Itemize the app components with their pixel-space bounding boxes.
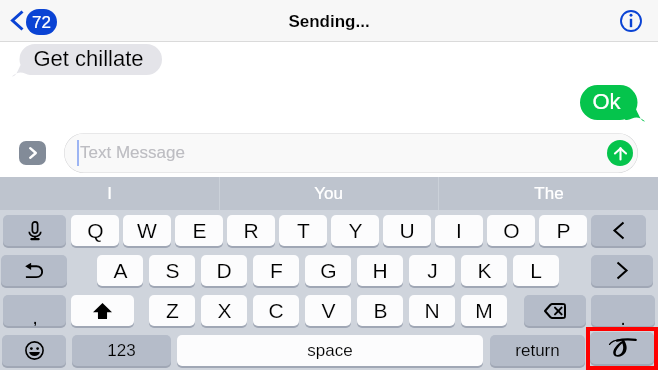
button[interactable]: Dictate	[3, 215, 66, 246]
button[interactable]: Z	[149, 295, 195, 326]
staticText: The	[534, 184, 564, 203]
staticText: K	[477, 259, 492, 282]
staticText: You	[314, 184, 343, 203]
button[interactable]: A	[97, 255, 143, 286]
staticText: V	[321, 299, 336, 322]
staticText: space	[307, 341, 353, 360]
button[interactable]: G	[305, 255, 351, 286]
button[interactable]: Back to 72 conversations	[6, 4, 64, 38]
staticText: Y	[348, 219, 363, 242]
staticText: F	[270, 259, 283, 282]
button[interactable]: Emoji	[2, 335, 66, 366]
staticText: 72	[32, 13, 51, 32]
button[interactable]: U	[383, 215, 431, 246]
staticText: A	[113, 259, 128, 282]
staticText: X	[217, 299, 232, 322]
staticText: Q	[87, 219, 104, 242]
button[interactable]: T	[279, 215, 327, 246]
button[interactable]: P	[539, 215, 587, 246]
button[interactable]: Handwriting	[590, 332, 654, 364]
staticText: return	[515, 341, 560, 360]
button[interactable]: Shift	[71, 295, 134, 326]
button[interactable]: I	[435, 215, 483, 246]
staticText: G	[320, 259, 337, 282]
button[interactable]: H	[357, 255, 403, 286]
staticText: ,	[32, 306, 38, 326]
staticText: 123	[107, 341, 136, 360]
button[interactable]: 123	[72, 335, 171, 366]
button[interactable]: return	[490, 335, 585, 366]
staticText: Sending...	[288, 12, 370, 31]
button[interactable]: X	[201, 295, 247, 326]
button[interactable]: W	[123, 215, 171, 246]
staticText: B	[373, 299, 388, 322]
button[interactable]: N	[409, 295, 455, 326]
button[interactable]: F	[253, 255, 299, 286]
staticText: J	[427, 259, 438, 282]
button[interactable]: S	[149, 255, 195, 286]
staticText: I	[107, 184, 112, 203]
staticText: C	[268, 299, 284, 322]
staticText: L	[530, 259, 542, 282]
button[interactable]: Y	[331, 215, 379, 246]
button[interactable]: Backspace	[524, 295, 586, 326]
button[interactable]: C	[253, 295, 299, 326]
staticText: O	[503, 219, 520, 242]
button[interactable]: Undo	[1, 255, 67, 286]
button[interactable]: O	[487, 215, 535, 246]
staticText: I	[456, 219, 462, 242]
staticText: M	[475, 299, 493, 322]
button[interactable]: Send	[607, 140, 633, 166]
button[interactable]: Next suggestion	[591, 255, 653, 286]
staticText: H	[372, 259, 388, 282]
staticText: E	[192, 219, 207, 242]
button[interactable]: The	[439, 177, 658, 210]
button[interactable]: B	[357, 295, 403, 326]
button[interactable]: I	[0, 177, 219, 210]
staticText: Ok	[592, 89, 621, 114]
staticText: .	[620, 307, 626, 326]
staticText: S	[165, 259, 180, 282]
button[interactable]: M	[461, 295, 507, 326]
button[interactable]: E	[175, 215, 223, 246]
button[interactable]: You	[219, 177, 438, 210]
staticText: Text Message	[80, 143, 185, 162]
button[interactable]: V	[305, 295, 351, 326]
staticText: P	[556, 219, 571, 242]
button[interactable]: K	[461, 255, 507, 286]
button[interactable]: Period	[591, 295, 655, 326]
button[interactable]: D	[201, 255, 247, 286]
staticText: U	[399, 219, 415, 242]
button[interactable]: Q	[71, 215, 119, 246]
staticText: Get chillate	[33, 46, 144, 71]
button[interactable]: J	[409, 255, 455, 286]
staticText: D	[216, 259, 232, 282]
button[interactable]: Text Message	[64, 133, 638, 173]
button[interactable]: Comma	[3, 295, 66, 326]
button[interactable]: Get chillate	[13, 44, 162, 75]
button[interactable]: Ok	[580, 85, 644, 120]
button[interactable]: space	[177, 335, 483, 366]
button[interactable]: Details	[620, 10, 642, 32]
button[interactable]: Show apps	[19, 141, 46, 165]
staticText: N	[424, 299, 440, 322]
staticText: W	[137, 219, 157, 242]
button[interactable]: L	[513, 255, 559, 286]
button[interactable]: Previous suggestion	[591, 215, 646, 246]
staticText: T	[297, 219, 310, 242]
staticText: Z	[166, 299, 179, 322]
staticText: R	[243, 219, 259, 242]
button[interactable]: R	[227, 215, 275, 246]
